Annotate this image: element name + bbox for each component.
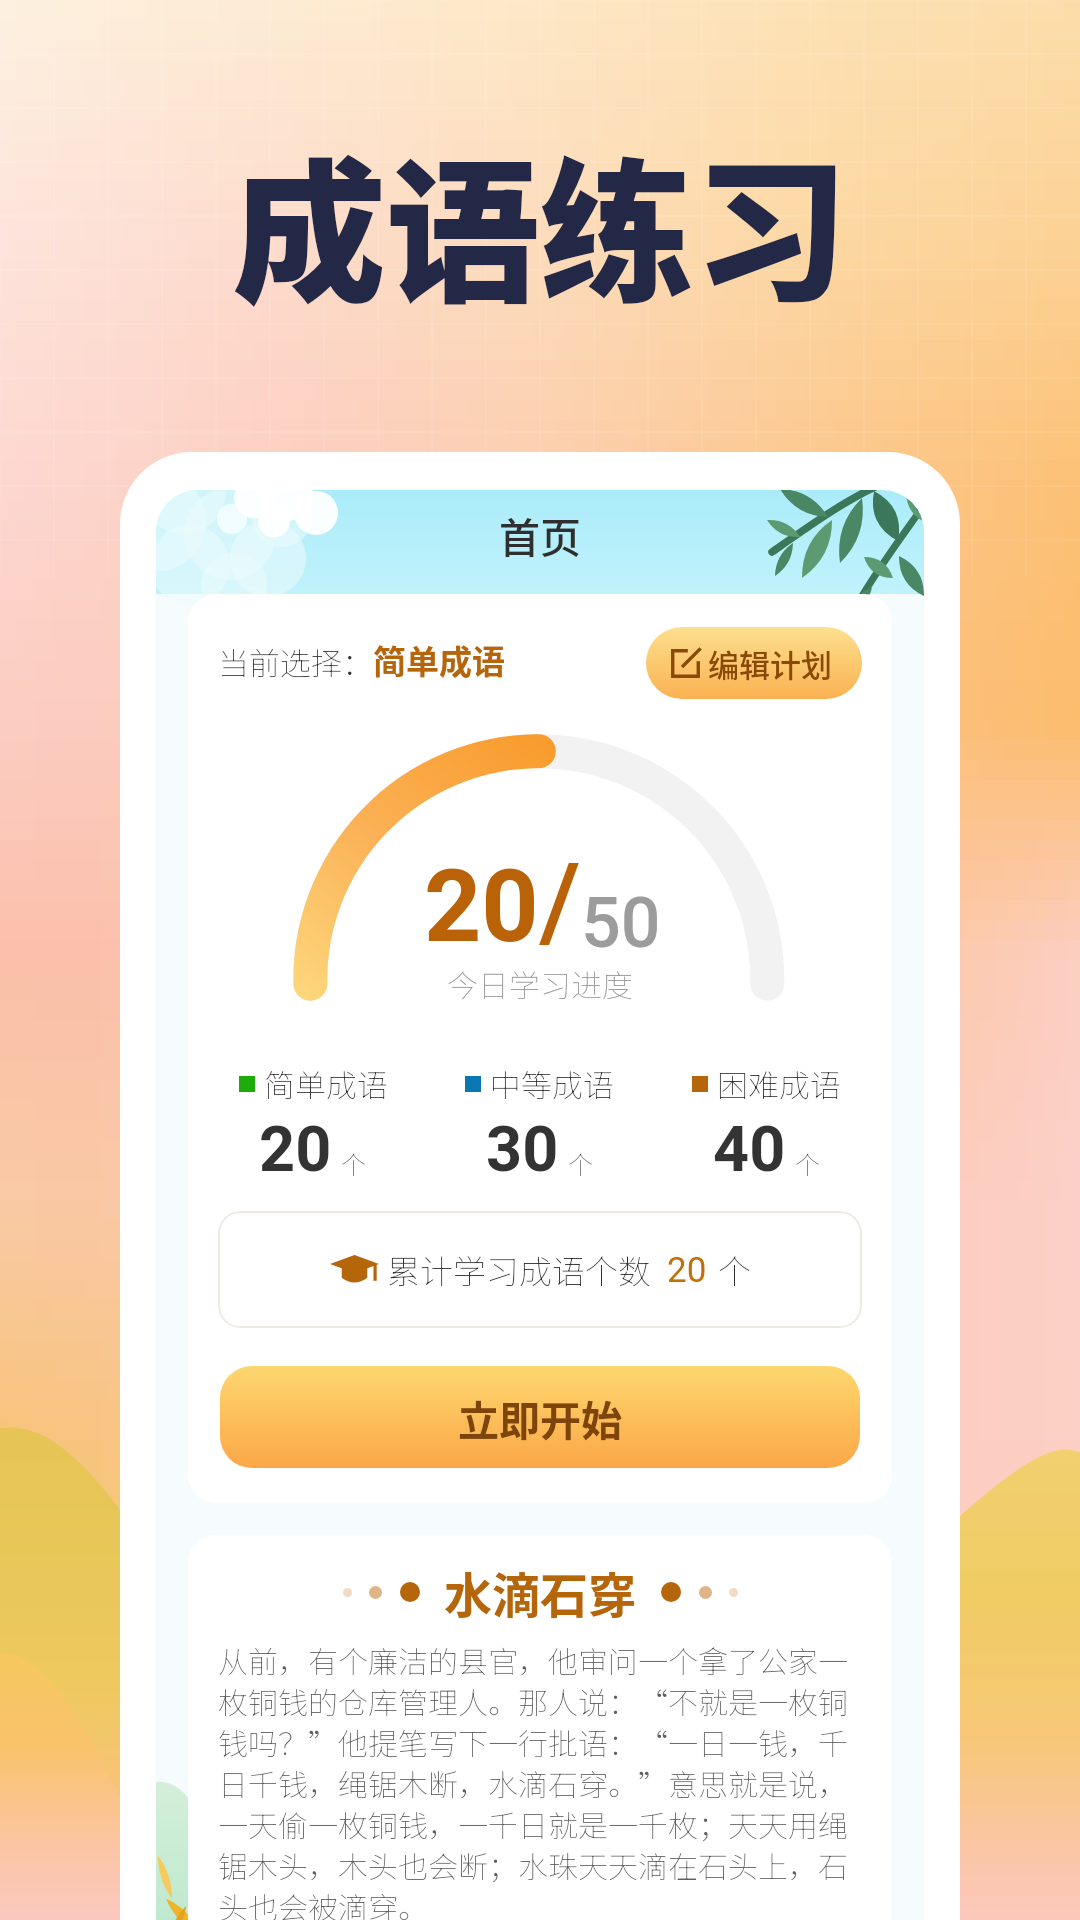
staticText: 50: [581, 882, 661, 964]
staticText: 中等成语: [490, 1061, 614, 1106]
staticText: 今日学习进度: [447, 961, 633, 1006]
staticText: 从前，有个廉洁的县官，他审问一个拿了公家一枚铜钱的仓库管理人。那人说：“不就是一…: [218, 1638, 862, 1920]
staticText: 当前选择：: [218, 639, 373, 684]
staticText: 简单成语: [264, 1061, 388, 1106]
staticText: 20: [667, 1250, 707, 1291]
staticText: 40: [713, 1113, 786, 1187]
staticText: 20: [259, 1113, 332, 1187]
staticText: 困难成语: [717, 1061, 841, 1106]
staticText: 成语练习: [232, 111, 849, 334]
staticText: 30: [486, 1113, 559, 1187]
staticText: 个: [795, 1145, 821, 1181]
staticText: 立即开始: [458, 1388, 622, 1447]
button[interactable]: 累计学习成语个数: [218, 1211, 862, 1328]
button[interactable]: 立即开始: [220, 1366, 860, 1468]
staticText: 个: [718, 1246, 751, 1294]
staticText: 20: [424, 848, 539, 965]
staticText: 简单成语: [373, 636, 505, 684]
button[interactable]: 编辑计划: [646, 627, 862, 699]
staticText: 编辑计划: [708, 641, 832, 686]
staticText: 首页: [499, 505, 581, 564]
staticText: 累计学习成语个数: [387, 1246, 651, 1294]
staticText: 水滴石穿: [444, 1557, 637, 1627]
staticText: /: [539, 841, 581, 965]
staticText: 个: [341, 1145, 367, 1181]
staticText: 个: [568, 1145, 594, 1181]
